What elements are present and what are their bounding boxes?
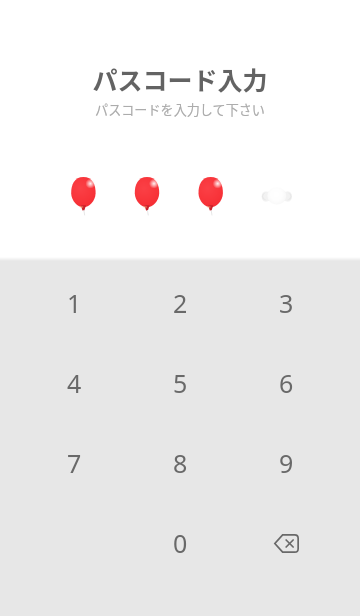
staticText: 5 (173, 366, 188, 400)
button[interactable]: 5 (127, 343, 233, 423)
staticText: 3 (279, 286, 294, 320)
button[interactable]: 3 (233, 263, 339, 343)
button[interactable]: 6 (233, 343, 339, 423)
staticText: パスコードを入力して下さい (95, 100, 265, 119)
button[interactable]: 2 (127, 263, 233, 343)
button[interactable]: 8 (127, 423, 233, 503)
button[interactable]: 1 (21, 263, 127, 343)
staticText: 7 (67, 446, 82, 480)
staticText: パスコード入力 (92, 61, 268, 97)
button[interactable]: 4 (21, 343, 127, 423)
button[interactable]: 7 (21, 423, 127, 503)
button[interactable]: 0 (127, 503, 233, 583)
staticText: 8 (173, 446, 188, 480)
staticText: 2 (173, 286, 188, 320)
staticText: 1 (67, 286, 82, 320)
staticText: 6 (279, 366, 294, 400)
staticText: 9 (279, 446, 294, 480)
button[interactable]: Delete (233, 503, 339, 583)
button[interactable]: 9 (233, 423, 339, 503)
other: Delete (274, 534, 299, 553)
staticText: 0 (173, 526, 188, 560)
staticText: 4 (67, 366, 82, 400)
